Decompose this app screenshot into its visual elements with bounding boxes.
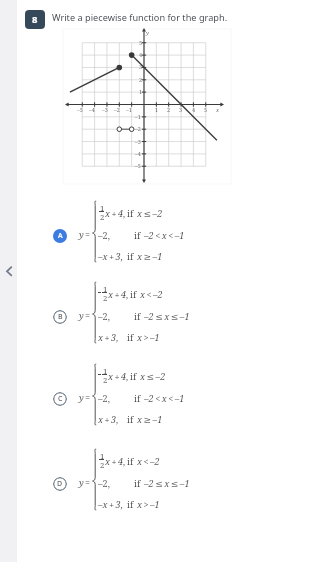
- staticText: y: [79, 476, 84, 488]
- staticText: 3: [139, 63, 143, 70]
- staticText: 2: [100, 212, 105, 223]
- staticText: 4: [139, 51, 143, 58]
- staticText: x < –2: [140, 288, 163, 300]
- staticText: –1: [135, 113, 141, 120]
- staticText: –2 < x < –1: [144, 229, 185, 241]
- staticText: y: [79, 309, 84, 321]
- staticText: 3: [179, 106, 183, 113]
- staticText: if: [127, 207, 134, 219]
- staticText: if: [127, 250, 134, 262]
- staticText: –2 ≤ x ≤ –1: [144, 477, 190, 489]
- staticText: 5: [139, 39, 143, 46]
- staticText: x + 4,: [105, 207, 126, 219]
- staticText: A: [58, 231, 63, 241]
- staticText: –2,: [98, 477, 110, 489]
- staticText: if: [130, 370, 137, 382]
- staticText: if: [127, 498, 134, 510]
- staticText: x + 4,: [108, 370, 129, 382]
- staticText: –2,: [98, 392, 110, 404]
- button[interactable]: B: [53, 310, 67, 324]
- staticText: x + 4,: [105, 455, 126, 467]
- staticText: 8: [32, 13, 38, 26]
- button[interactable]: A: [53, 229, 67, 243]
- button[interactable]: 8: [25, 10, 45, 29]
- staticText: –2 < x < –1: [144, 392, 185, 404]
- staticText: x ≤ –2: [140, 370, 166, 382]
- staticText: x ≥ –1: [137, 250, 163, 262]
- staticText: 1: [103, 366, 108, 377]
- staticText: x > –1: [137, 331, 160, 343]
- staticText: if: [134, 229, 141, 241]
- staticText: y: [79, 391, 84, 403]
- staticText: =: [85, 309, 91, 321]
- staticText: Write a piecewise function for the graph…: [52, 11, 228, 24]
- button[interactable]: C: [53, 392, 67, 406]
- staticText: B: [58, 312, 63, 322]
- staticText: y: [79, 228, 84, 240]
- staticText: 1: [139, 88, 143, 95]
- staticText: D: [57, 479, 63, 489]
- staticText: 2: [100, 460, 105, 471]
- staticText: –5: [77, 106, 83, 113]
- staticText: –1: [126, 106, 132, 113]
- staticText: –x + 3,: [98, 498, 123, 510]
- staticText: if: [130, 288, 137, 300]
- staticText: 4: [192, 106, 196, 113]
- staticText: =: [85, 391, 91, 403]
- staticText: if: [134, 392, 141, 404]
- staticText: x + 3,: [98, 331, 119, 343]
- staticText: if: [127, 331, 134, 343]
- staticText: if: [127, 455, 134, 467]
- staticText: if: [134, 310, 141, 322]
- staticText: –2,: [98, 310, 110, 322]
- button[interactable]: Collapse panel: [1, 263, 17, 279]
- staticText: y: [146, 29, 149, 36]
- staticText: 1: [100, 203, 105, 214]
- staticText: x ≥ –1: [137, 413, 163, 425]
- staticText: x + 3,: [98, 413, 119, 425]
- staticText: if: [134, 477, 141, 489]
- staticText: 1: [155, 106, 159, 113]
- staticText: 2: [103, 293, 108, 304]
- staticText: x + 4,: [108, 288, 129, 300]
- staticText: =: [85, 476, 91, 488]
- staticText: –3: [102, 106, 108, 113]
- staticText: –2: [135, 125, 141, 132]
- staticText: –5: [135, 162, 141, 169]
- staticText: –x + 3,: [98, 250, 123, 262]
- staticText: –2 ≤ x ≤ –1: [144, 310, 190, 322]
- staticText: –2: [114, 106, 120, 113]
- staticText: –2,: [98, 229, 110, 241]
- button[interactable]: D: [53, 477, 67, 491]
- staticText: x ≤ –2: [137, 207, 163, 219]
- staticText: 1: [100, 451, 105, 462]
- staticText: 2: [167, 106, 171, 113]
- staticText: C: [58, 394, 63, 404]
- staticText: –3: [135, 138, 141, 145]
- staticText: 2: [139, 76, 143, 83]
- staticText: –4: [135, 150, 141, 157]
- staticText: 1: [103, 284, 108, 295]
- staticText: x < –2: [137, 455, 160, 467]
- staticText: 5: [204, 106, 208, 113]
- staticText: if: [127, 413, 134, 425]
- staticText: x > –1: [137, 498, 160, 510]
- staticText: x: [216, 106, 220, 113]
- staticText: 2: [103, 375, 108, 386]
- staticText: =: [85, 228, 91, 240]
- staticText: –4: [89, 106, 95, 113]
